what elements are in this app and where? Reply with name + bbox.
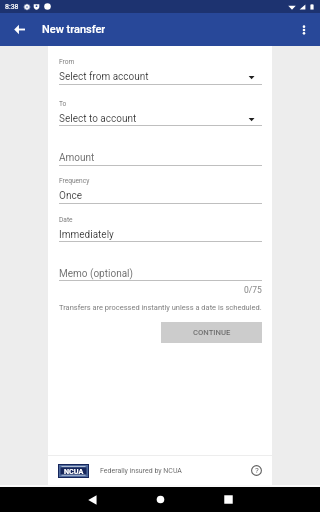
- staticText: New transfer: [42, 23, 106, 36]
- button[interactable]: Recent apps: [213, 487, 243, 512]
- staticText: Date: [59, 216, 73, 224]
- staticText: Memo (optional): [59, 268, 134, 280]
- staticText: CONTINUE: [193, 328, 231, 337]
- staticText: NCUA: [64, 467, 84, 475]
- staticText: From: [59, 58, 75, 66]
- staticText: 0/75: [244, 285, 262, 295]
- staticText: To: [59, 100, 67, 108]
- button[interactable]: Home: [145, 487, 175, 512]
- staticText: Amount: [59, 152, 95, 164]
- staticText: 8:38: [5, 3, 19, 11]
- staticText: Frequency: [59, 177, 90, 185]
- staticText: Immediately: [59, 229, 114, 241]
- button[interactable]: Back: [77, 487, 107, 512]
- staticText: Federally insured by NCUA: [100, 467, 182, 475]
- button[interactable]: Help: [251, 465, 262, 476]
- staticText: Select to account: [59, 113, 137, 125]
- button[interactable]: Back: [7, 17, 32, 42]
- button[interactable]: CONTINUE: [161, 322, 262, 343]
- staticText: Select from account: [59, 71, 149, 83]
- staticText: Transfers are processed instantly unless…: [59, 303, 262, 312]
- staticText: ?: [255, 466, 259, 475]
- staticText: Once: [59, 190, 82, 202]
- button[interactable]: More options: [287, 13, 320, 46]
